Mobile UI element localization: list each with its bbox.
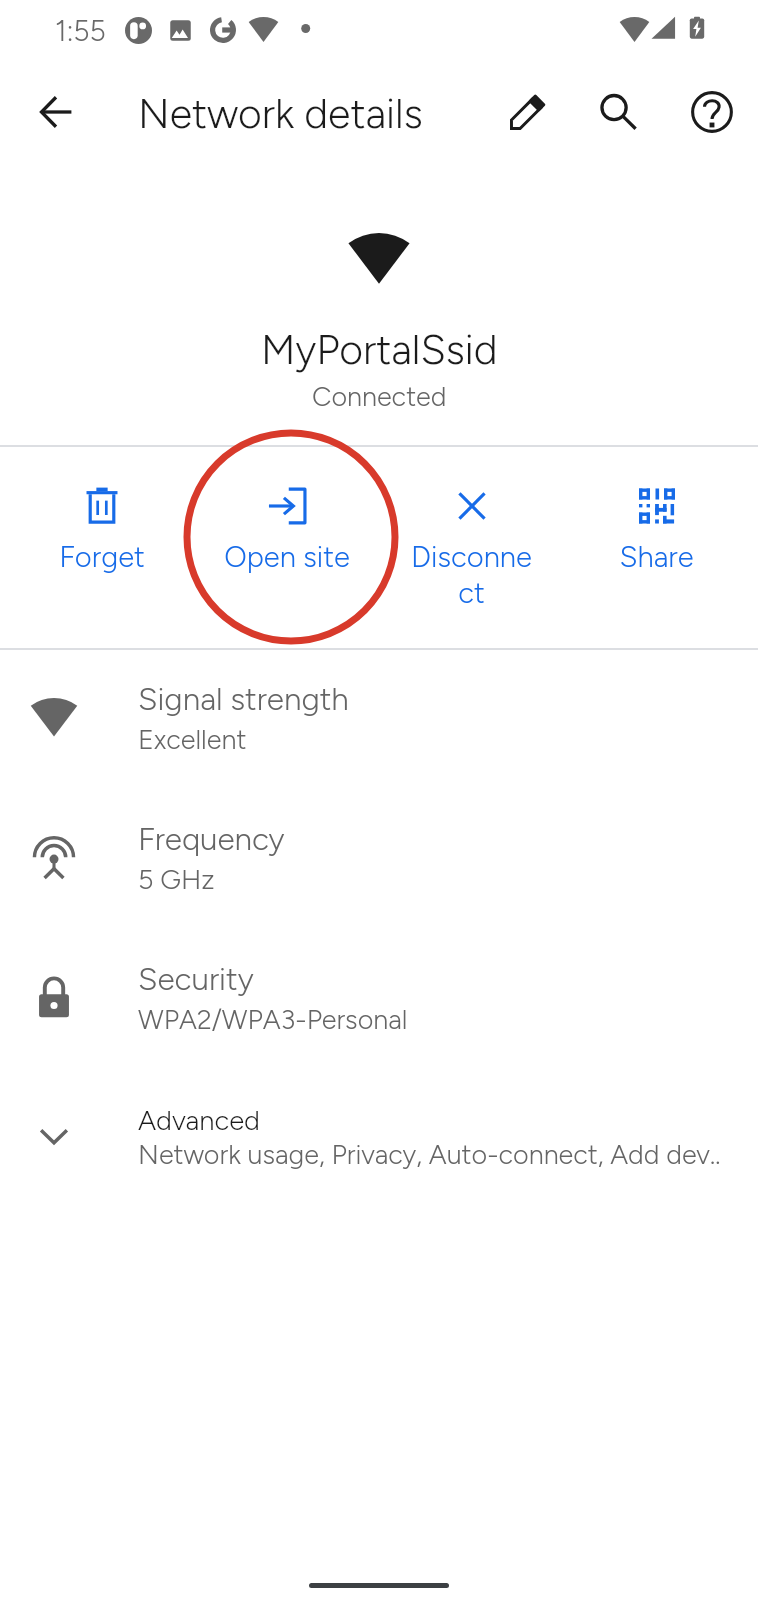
staticText: Advanced [138,1104,260,1137]
staticText: 5 GHz [138,863,215,895]
staticText: Share [619,539,694,574]
staticText: Security [138,960,254,998]
staticText: Signal strength [138,680,349,718]
button[interactable]: Frequency [0,787,758,927]
button[interactable]: Navigate up [16,70,96,150]
button[interactable]: Forget [9,447,194,647]
button[interactable]: Security [0,927,758,1067]
staticText: WPA2/WPA3-Personal [138,1003,408,1035]
button[interactable]: Signal strength [0,647,758,787]
button[interactable]: Disconnect [379,447,564,647]
staticText: MyPortalSsid [261,325,498,374]
staticText: Excellent [138,723,247,755]
button[interactable]: Help and feedback [670,70,754,154]
button[interactable]: Search [576,70,660,154]
staticText: Network usage, Privacy, Auto-connect, Ad… [138,1138,721,1170]
button[interactable]: Modify [484,70,568,154]
staticText: Disconnect [406,539,537,610]
staticText: Connected [312,380,447,412]
staticText: Frequency [138,820,285,858]
button[interactable]: Advanced [0,1067,758,1207]
staticText: Network details [138,89,423,138]
staticText: Open site [224,539,350,574]
button[interactable]: Open site [194,447,379,647]
button[interactable]: Share [564,447,749,647]
staticText: Forget [59,539,145,574]
staticText: 1:55 [55,14,106,48]
